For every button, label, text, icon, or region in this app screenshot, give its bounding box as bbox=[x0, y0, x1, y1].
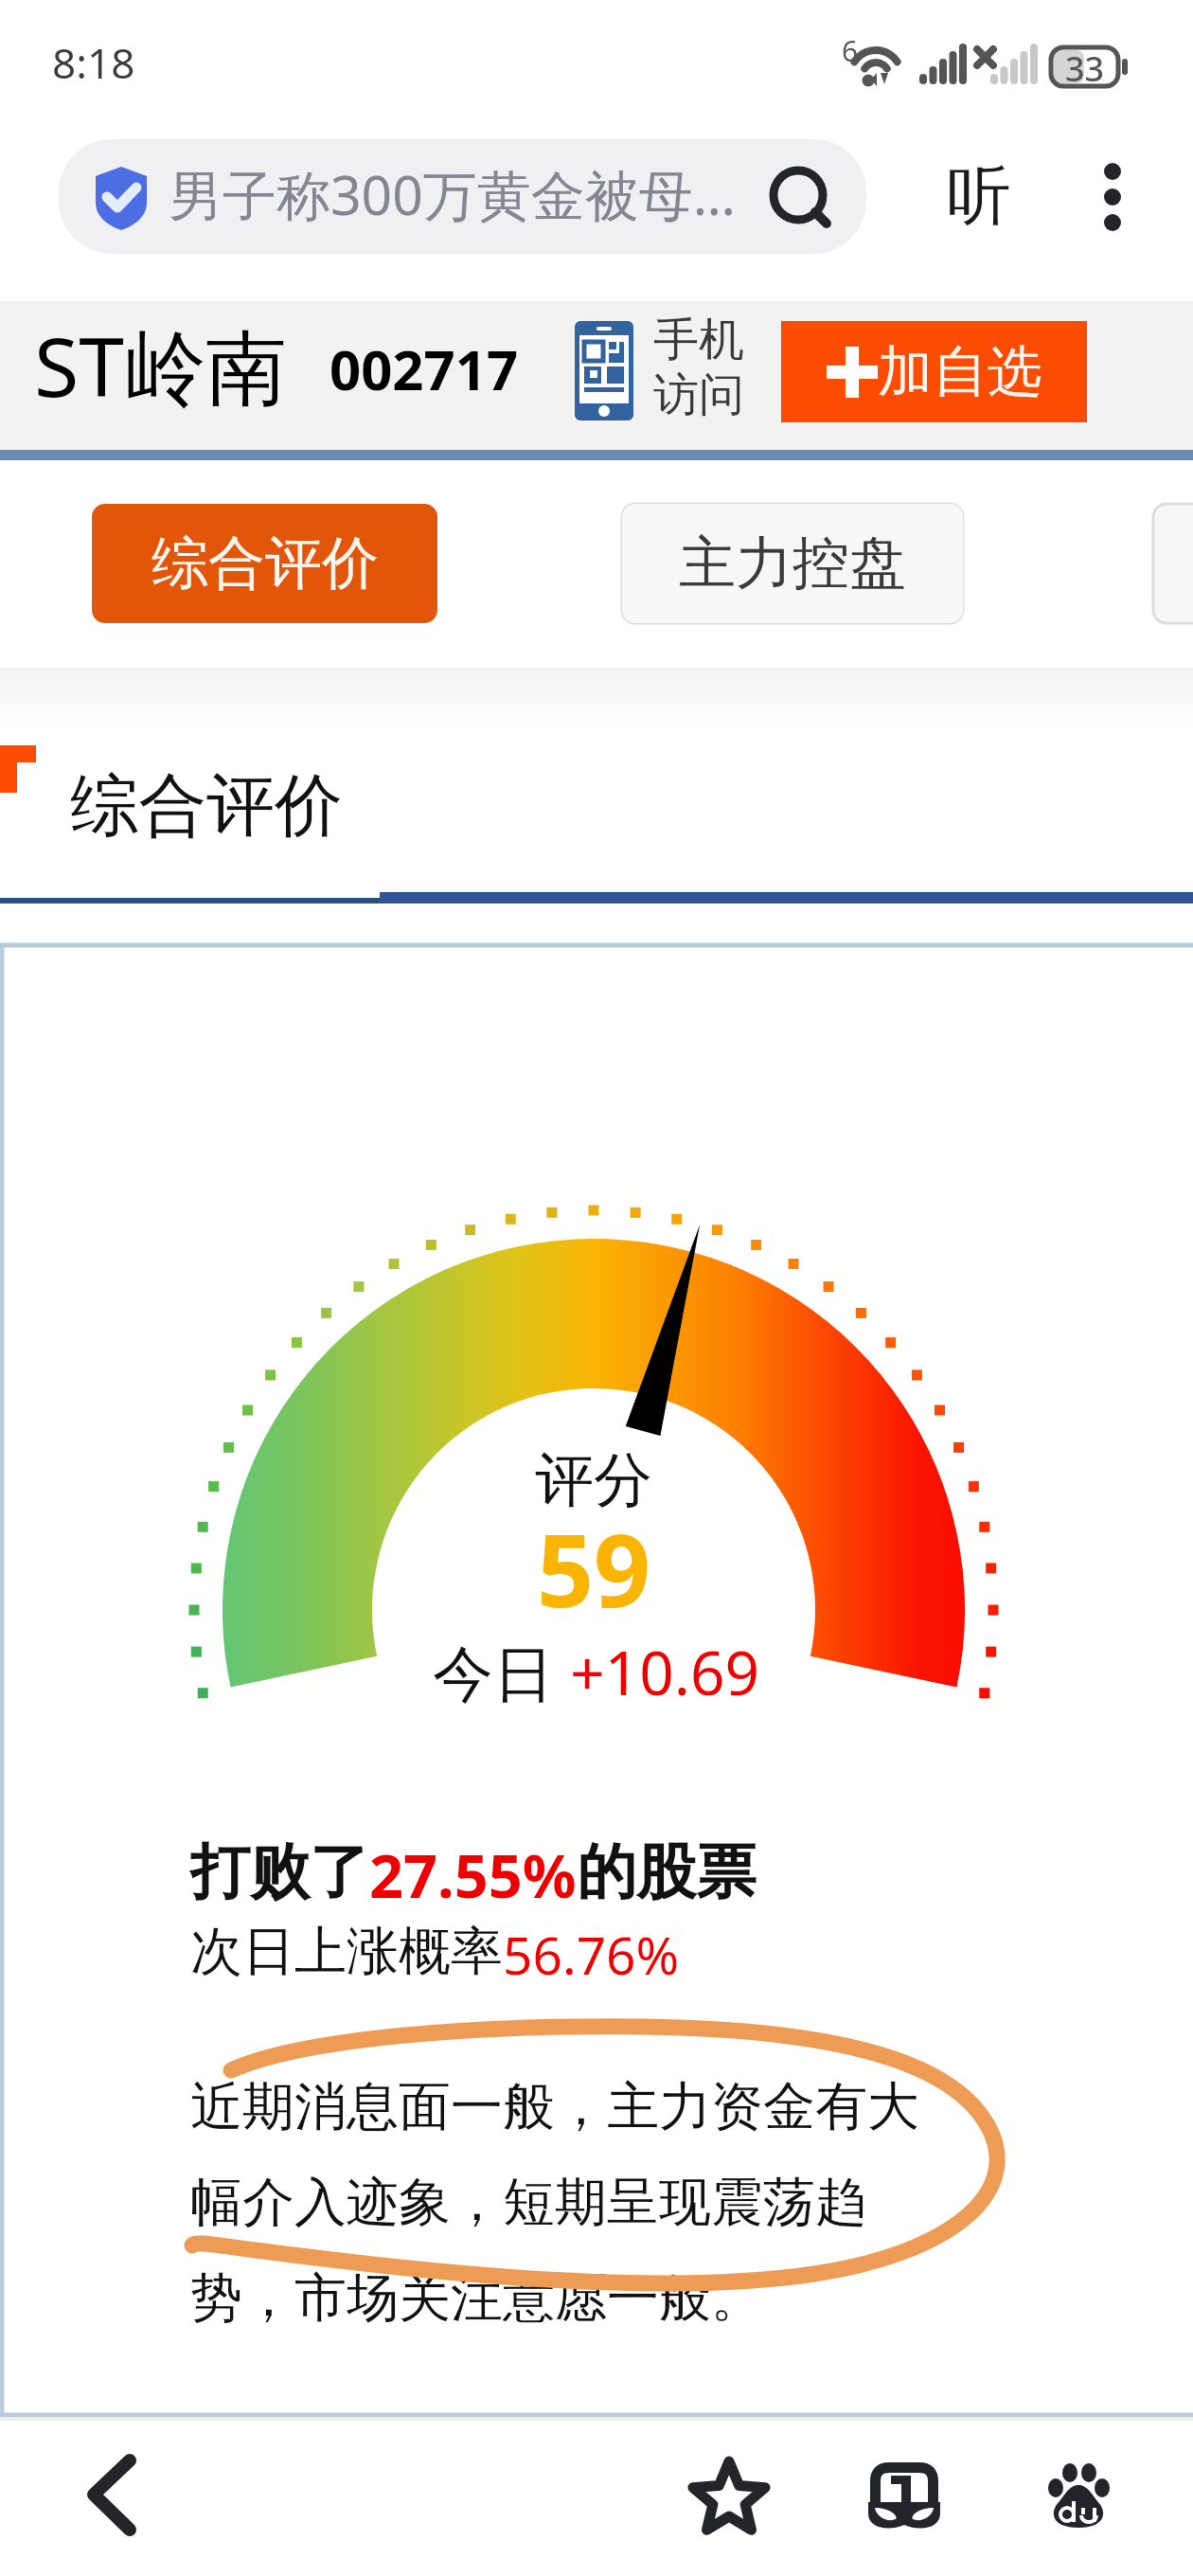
staticText: 手机 访问 bbox=[653, 312, 744, 424]
button[interactable]: 男子称300万黄金被母… bbox=[59, 139, 866, 254]
staticText: 的股票 bbox=[577, 1834, 756, 1909]
button[interactable]: 加自选 bbox=[781, 321, 1087, 422]
staticText: 56.76% bbox=[503, 1919, 680, 1990]
staticText: 加自选 bbox=[878, 337, 1042, 406]
staticText: 59 bbox=[0, 1501, 1190, 1637]
staticText: 评分 bbox=[0, 1443, 1190, 1517]
staticText: 男子称300万黄金被母… bbox=[169, 157, 736, 231]
staticText: 6 bbox=[842, 31, 859, 70]
staticText: 打败了 bbox=[190, 1834, 369, 1909]
staticText: 002717 bbox=[329, 331, 519, 406]
button[interactable]: Back bbox=[38, 2434, 189, 2557]
staticText: 综合评价 bbox=[70, 763, 343, 850]
staticText: 33 bbox=[1065, 45, 1105, 87]
staticText: +10.69 bbox=[570, 1631, 760, 1713]
button[interactable]: 综合评价 bbox=[92, 504, 437, 623]
button[interactable]: Bookmarks bbox=[663, 2434, 795, 2557]
button[interactable]: Baidu home bbox=[1013, 2434, 1146, 2557]
button[interactable]: 听 bbox=[917, 143, 1041, 250]
staticText: 8:18 bbox=[52, 34, 135, 91]
staticText: 27.55% bbox=[369, 1834, 577, 1916]
staticText: 次日上涨概率 bbox=[190, 1919, 503, 1984]
button[interactable]: 主力控盘 bbox=[622, 504, 963, 623]
staticText: 综合评价 bbox=[151, 528, 379, 599]
staticText: 听 bbox=[947, 156, 1011, 238]
staticText: 近期消息面一般，主力资金有大 幅介入迹象，短期呈现震荡趋 势，市场关注意愿一般。 bbox=[190, 2074, 919, 2332]
button[interactable]: More options bbox=[1060, 142, 1165, 251]
staticText: 主力控盘 bbox=[679, 528, 906, 599]
staticText: 今日 bbox=[433, 1631, 570, 1713]
button[interactable]: Tabs bbox=[843, 2434, 975, 2557]
staticText: ST岭南 bbox=[34, 310, 288, 420]
